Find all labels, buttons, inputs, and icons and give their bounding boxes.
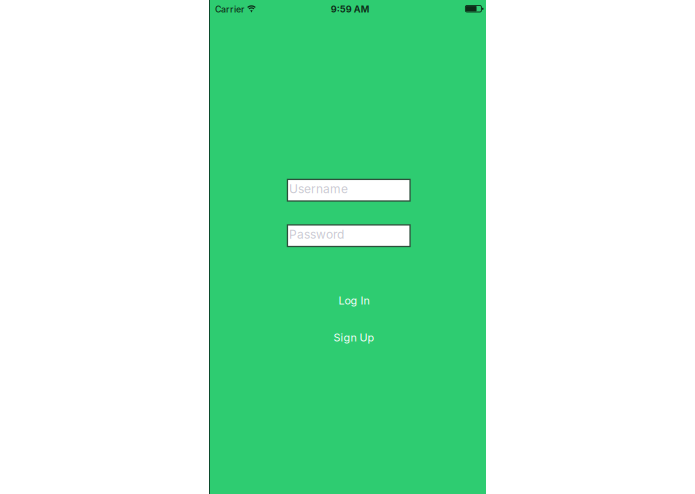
staticText: 9:59 AM	[331, 3, 370, 15]
button[interactable]: Username	[287, 179, 410, 201]
button[interactable]: Password	[287, 225, 410, 246]
staticText: Log In	[338, 294, 369, 307]
button[interactable]: Sign Up	[299, 330, 409, 344]
staticText: Carrier	[215, 4, 244, 15]
staticText: Password	[289, 227, 344, 241]
staticText: Username	[289, 181, 348, 196]
button[interactable]: Log In	[299, 293, 409, 307]
staticText: Sign Up	[333, 331, 374, 344]
